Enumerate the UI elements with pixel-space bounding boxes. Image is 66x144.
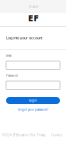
staticText: EF [28,11,39,24]
staticText: Cookies [51,133,62,137]
staticText: ©2024 EF Education First Privacy [2,133,45,137]
button[interactable]: Cookies [51,133,62,137]
staticText: Login [29,99,37,102]
button[interactable]: Forgot your password? [0,108,66,111]
staticText: Password [6,74,18,77]
staticText: Log into your account [6,35,42,40]
button[interactable]: Login [6,97,60,104]
staticText: Email [6,54,12,57]
staticText: ef.com [28,5,37,8]
staticText: Forgot your password? [18,108,48,111]
